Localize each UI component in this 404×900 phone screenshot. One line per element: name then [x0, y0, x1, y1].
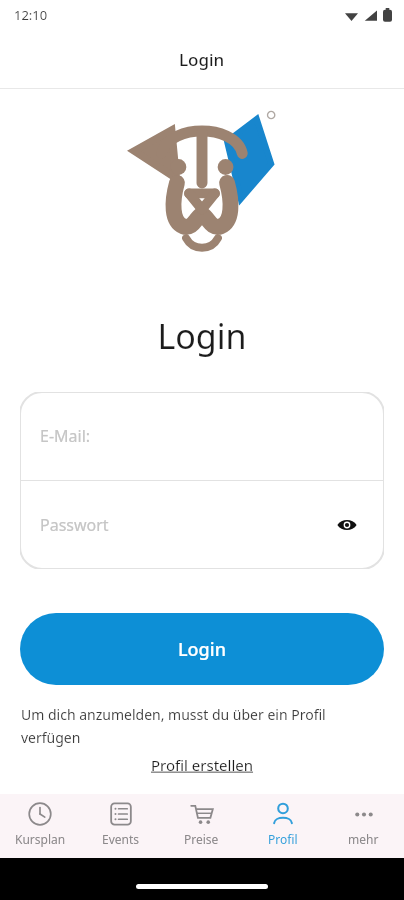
staticText: Login	[178, 637, 226, 662]
button[interactable]: Passwort anzeigen	[330, 508, 364, 542]
staticText: mehr	[348, 831, 379, 847]
button[interactable]: Kursplan	[0, 794, 80, 858]
staticText: Um dich anzumelden, musst du über ein Pr…	[21, 705, 383, 747]
staticText: E-Mail:	[40, 425, 91, 447]
button[interactable]: Profil	[242, 794, 323, 858]
button[interactable]: mehr	[323, 794, 404, 858]
button[interactable]: Profil erstellen	[143, 753, 262, 777]
button[interactable]: Preise	[161, 794, 242, 858]
button[interactable]: Login	[20, 613, 384, 685]
staticText: Preise	[184, 831, 219, 847]
staticText: Profil	[268, 831, 298, 847]
staticText: Passwort	[40, 514, 109, 536]
staticText: 12:10	[14, 6, 48, 24]
staticText: Login	[179, 48, 225, 71]
button[interactable]: E-Mail:	[20, 392, 384, 480]
staticText: Login	[0, 313, 404, 359]
staticText: Events	[102, 831, 140, 847]
staticText: Kursplan	[15, 831, 66, 847]
button[interactable]: Events	[80, 794, 161, 858]
button[interactable]: Passwort	[20, 481, 384, 569]
